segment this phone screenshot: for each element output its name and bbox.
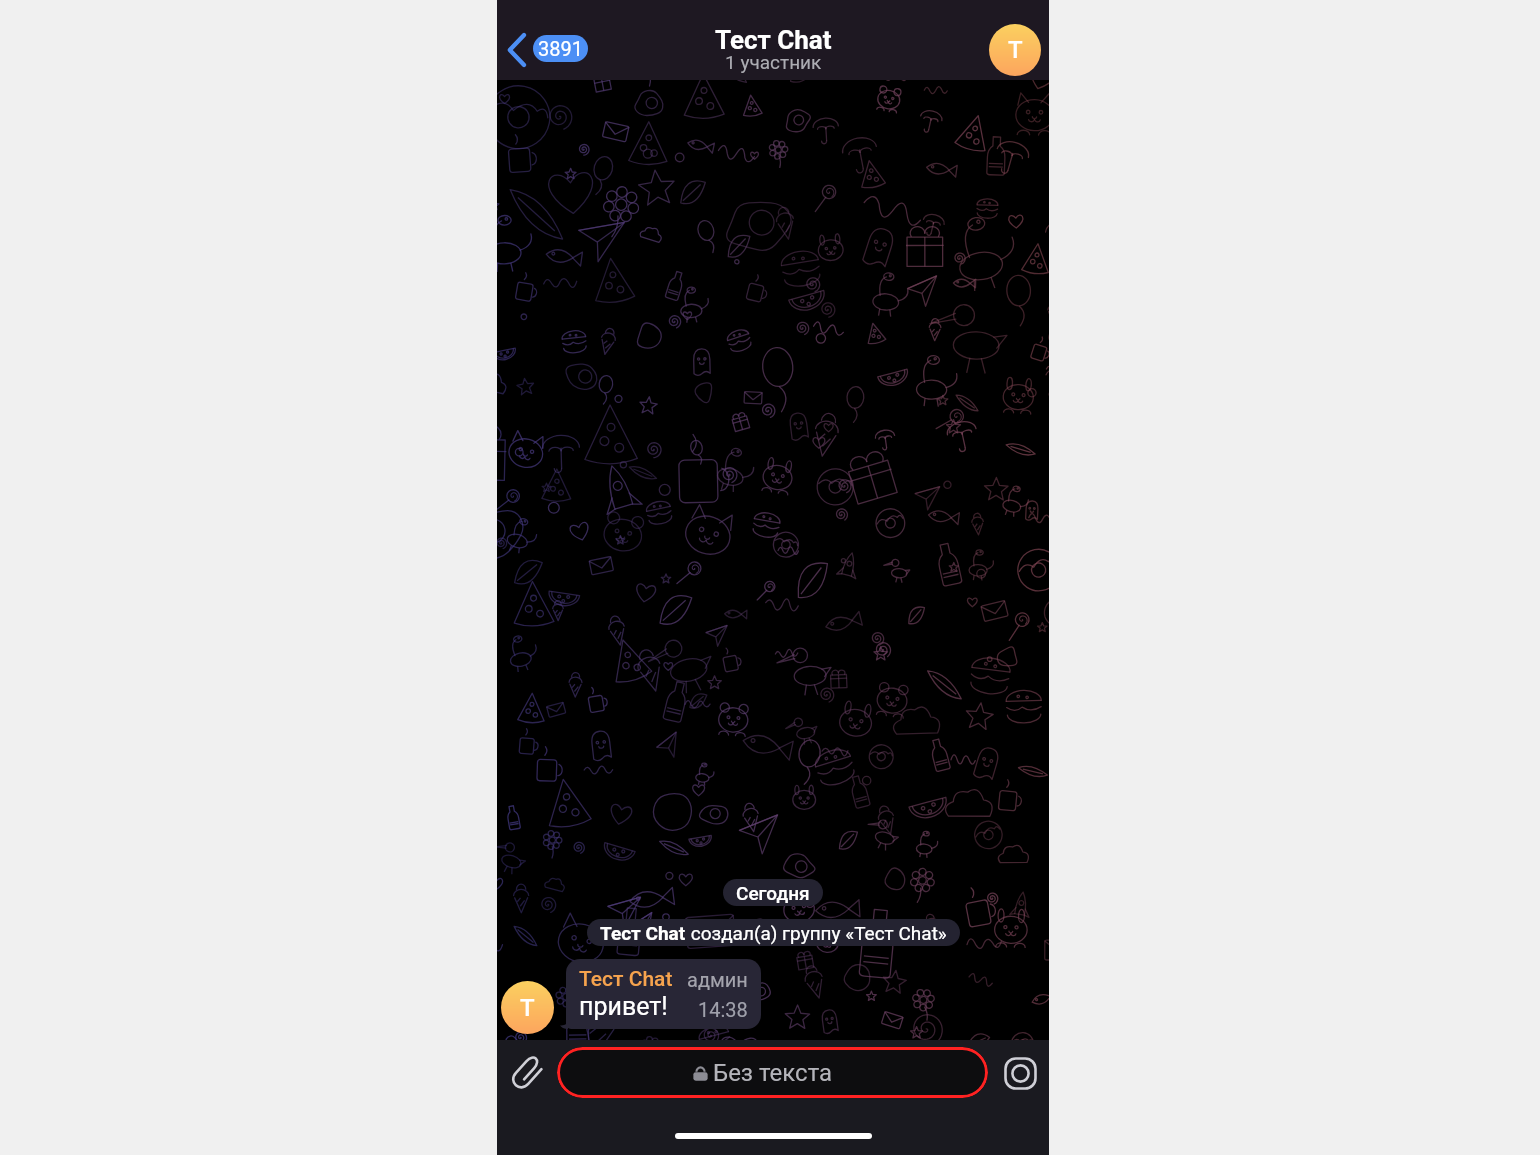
staticText: T	[1008, 36, 1023, 64]
button[interactable]: Chat avatar	[989, 24, 1041, 76]
staticText: Тест Chat	[600, 922, 686, 944]
button[interactable]: Camera	[996, 1049, 1044, 1097]
staticText: админ	[687, 968, 748, 991]
staticText: Тест Chat	[715, 25, 832, 55]
staticText: создал(а) группу «Тест Chat»	[686, 922, 947, 944]
button[interactable]: Back, 3891 unread	[498, 25, 596, 75]
staticText: 14:38	[698, 998, 748, 1021]
button[interactable]: Attach	[500, 1047, 552, 1099]
staticText: Без текста	[713, 1059, 833, 1087]
staticText: 1 участник	[725, 51, 822, 73]
button[interactable]: Без текста	[557, 1047, 988, 1098]
button[interactable]: Тест Chat	[566, 959, 761, 1029]
staticText: T	[520, 994, 535, 1022]
staticText: 3891	[538, 37, 583, 60]
staticText: Тест Chat	[579, 967, 673, 992]
staticText: Сегодня	[736, 882, 810, 904]
staticText: привет!	[579, 992, 668, 1021]
